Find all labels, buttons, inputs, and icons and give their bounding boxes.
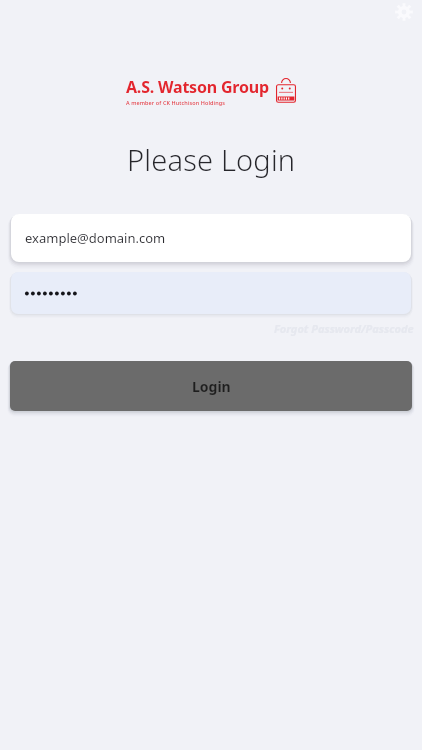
button[interactable]: example@domain.com	[11, 214, 411, 262]
button[interactable]	[11, 272, 411, 314]
button[interactable]: Forgot Password/Passcode	[270, 319, 418, 338]
staticText: Forgot Password/Passcode	[274, 321, 414, 336]
button[interactable]: Login	[10, 361, 412, 411]
staticText: Please Login	[127, 140, 296, 179]
button[interactable]: Settings	[393, 1, 415, 23]
staticText: example@domain.com	[25, 229, 166, 247]
staticText: A member of CK Hutchison Holdings	[126, 99, 225, 106]
staticText: Login	[192, 377, 231, 396]
staticText: A.S. Watson Group	[126, 76, 269, 98]
